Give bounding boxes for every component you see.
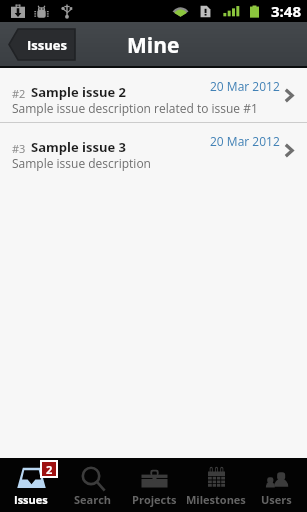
- other: Open issue: [271, 123, 307, 177]
- staticText: 2: [46, 462, 53, 476]
- staticText: Issues: [27, 36, 67, 54]
- button[interactable]: Projects: [124, 458, 185, 512]
- staticText: Search: [74, 492, 112, 507]
- button[interactable]: 2: [0, 458, 62, 512]
- staticText: Milestones: [186, 492, 246, 507]
- staticText: Sample issue 3: [31, 138, 126, 156]
- other: Open issue: [271, 68, 307, 122]
- staticText: Issues: [14, 492, 48, 507]
- staticText: Mine: [127, 31, 180, 60]
- button[interactable]: Search: [62, 458, 124, 512]
- staticText: 20 Mar 2012: [210, 78, 280, 94]
- button[interactable]: Users: [246, 458, 307, 512]
- staticText: 3:48: [271, 1, 302, 21]
- button[interactable]: #2: [0, 68, 307, 122]
- staticText: Sample issue description related to issu…: [12, 100, 258, 116]
- button[interactable]: #3: [0, 123, 307, 177]
- button[interactable]: Issues: [9, 29, 75, 60]
- staticText: Users: [261, 492, 292, 507]
- staticText: Sample issue description: [12, 155, 151, 171]
- button[interactable]: Milestones: [185, 458, 246, 512]
- staticText: Sample issue 2: [31, 83, 126, 101]
- staticText: 20 Mar 2012: [210, 133, 280, 149]
- staticText: #3: [12, 141, 26, 156]
- staticText: #2: [12, 86, 26, 101]
- staticText: Projects: [132, 492, 177, 507]
